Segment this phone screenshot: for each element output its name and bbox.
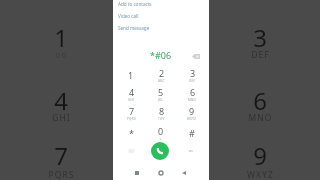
staticText: 5 — [158, 86, 164, 98]
staticText: 6 — [253, 84, 267, 114]
staticText: PQRS — [48, 169, 75, 180]
staticText: Send message — [118, 25, 150, 31]
staticText: MNO — [248, 112, 273, 124]
staticText: Video call — [118, 13, 139, 19]
staticText: # — [189, 127, 195, 139]
staticText: 7 — [54, 139, 68, 169]
button[interactable]: * — [116, 123, 146, 142]
button[interactable]: 0 — [146, 123, 176, 142]
staticText: 6 — [190, 86, 196, 98]
staticText: DEF — [189, 79, 196, 83]
staticText: 0 — [158, 125, 164, 137]
button[interactable]: # — [177, 123, 207, 142]
staticText: 1 — [128, 69, 134, 81]
staticText: 3 — [190, 67, 196, 79]
button[interactable]: Backspace — [189, 49, 203, 63]
staticText: + — [160, 137, 163, 141]
staticText: MNO — [188, 98, 197, 102]
staticText: GHI — [52, 112, 71, 124]
button[interactable]: 1 — [116, 65, 146, 84]
button[interactable]: Add to contacts — [113, 0, 209, 9]
button[interactable]: Back — [177, 166, 191, 180]
button[interactable]: Video call — [113, 10, 209, 21]
staticText: 4 — [129, 86, 135, 98]
staticText: ABC — [158, 79, 165, 83]
staticText: 9 — [253, 139, 267, 169]
staticText: 8 — [159, 105, 165, 117]
staticText: *#06 — [150, 49, 172, 61]
staticText: 4 — [54, 84, 68, 114]
staticText: JKL — [158, 98, 164, 102]
button[interactable]: 9 — [177, 103, 207, 122]
staticText: GHI — [128, 98, 135, 102]
staticText: oo — [55, 49, 68, 61]
staticText: 7 — [129, 105, 135, 117]
button[interactable]: Dial pad options — [124, 144, 138, 158]
button[interactable]: Recents — [130, 166, 144, 180]
button[interactable]: Call — [151, 142, 169, 160]
button[interactable]: Send message — [113, 22, 209, 33]
staticText: WXYZ — [187, 117, 197, 121]
button[interactable]: 5 — [146, 84, 176, 103]
staticText: Add to contacts — [118, 1, 152, 7]
staticText: 3 — [253, 21, 267, 51]
staticText: 1 — [54, 21, 68, 51]
staticText: DEF — [251, 49, 270, 61]
staticText: WXYZ — [247, 169, 274, 180]
staticText: PQRS — [127, 117, 136, 121]
button[interactable]: 6 — [177, 84, 207, 103]
staticText: TUV — [158, 117, 165, 121]
staticText: * — [129, 127, 134, 139]
button[interactable]: 7 — [116, 103, 146, 122]
button[interactable]: 2 — [146, 65, 176, 84]
staticText: 9 — [189, 105, 195, 117]
button[interactable]: Home — [154, 166, 168, 180]
button[interactable]: 4 — [116, 84, 146, 103]
button[interactable]: 3 — [177, 65, 207, 84]
staticText: 2 — [159, 67, 165, 79]
button[interactable]: Video call — [184, 144, 198, 158]
button[interactable]: 8 — [146, 103, 176, 122]
